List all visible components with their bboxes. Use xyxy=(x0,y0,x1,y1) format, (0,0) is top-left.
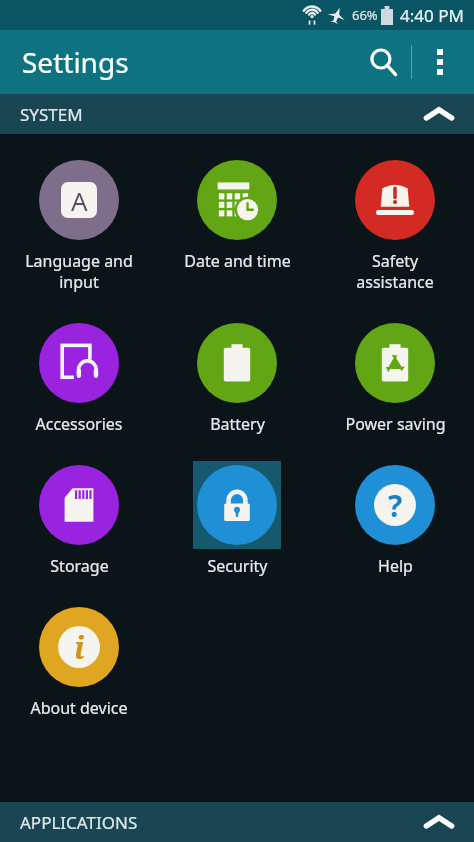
button[interactable]: Power saving xyxy=(316,319,474,435)
staticText: About device xyxy=(30,697,128,719)
staticText: SYSTEM xyxy=(20,103,83,126)
button[interactable]: A xyxy=(0,156,158,293)
staticText: Battery xyxy=(210,413,265,435)
staticText: Language and input xyxy=(25,250,133,293)
staticText: 66% xyxy=(352,6,378,24)
button[interactable]: Accessories xyxy=(0,319,158,435)
button[interactable]: Search xyxy=(355,34,411,90)
staticText: APPLICATIONS xyxy=(20,811,138,834)
button[interactable]: Storage xyxy=(0,461,158,577)
staticText: Date and time xyxy=(184,250,291,272)
button[interactable]: Security xyxy=(158,461,316,577)
button[interactable]: More options xyxy=(412,34,468,90)
staticText: A xyxy=(71,183,88,218)
button[interactable]: i xyxy=(0,603,158,719)
staticText: ? xyxy=(388,485,403,526)
button[interactable]: Battery xyxy=(158,319,316,435)
staticText: Settings xyxy=(22,43,129,81)
staticText: Security xyxy=(207,555,268,577)
staticText: Storage xyxy=(50,555,109,577)
button[interactable]: SYSTEM xyxy=(0,94,474,134)
staticText: Safety assistance xyxy=(356,250,434,293)
staticText: i xyxy=(74,627,85,668)
button[interactable]: APPLICATIONS xyxy=(0,802,474,842)
staticText: 4:40 PM xyxy=(400,4,464,27)
button[interactable]: Safety assistance xyxy=(316,156,474,293)
button[interactable]: ? xyxy=(316,461,474,577)
staticText: Accessories xyxy=(35,413,123,435)
staticText: Help xyxy=(378,555,413,577)
button[interactable]: Date and time xyxy=(158,156,316,272)
staticText: Power saving xyxy=(345,413,446,435)
